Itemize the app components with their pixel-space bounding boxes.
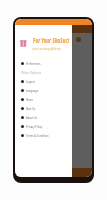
staticText: Rate Us	[26, 107, 36, 111]
staticText: Other Options	[21, 71, 42, 75]
staticText: Share	[26, 98, 33, 102]
button[interactable]: Privacy Policy	[15, 122, 72, 131]
button[interactable]: Logout	[15, 77, 72, 86]
button[interactable]: Preferences	[15, 59, 72, 68]
staticText: Logout	[26, 80, 35, 84]
button[interactable]: Terms & Condition	[15, 131, 72, 140]
button[interactable]: Share	[15, 95, 72, 104]
staticText: Terms & Condition	[26, 134, 49, 138]
staticText: your one stop gift shop	[18, 47, 75, 51]
staticText: Privacy Policy	[26, 125, 43, 129]
button[interactable]: Language	[15, 86, 72, 95]
staticText: Language	[26, 89, 39, 93]
staticText: For Your ShaSuci	[33, 36, 70, 45]
staticText: About Us	[26, 116, 38, 120]
staticText: Preferences	[26, 62, 41, 66]
button[interactable]: About Us	[15, 113, 72, 122]
button[interactable]: Rate Us	[15, 104, 72, 113]
